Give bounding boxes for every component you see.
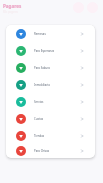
- staticText: Tiendas: [34, 134, 80, 138]
- staticText: Para Sabura: [34, 66, 80, 70]
- staticText: Remesas: [34, 32, 80, 36]
- button[interactable]: Servios: [6, 93, 95, 110]
- staticText: Cuotas: [34, 117, 80, 121]
- button[interactable]: Tiendas: [6, 127, 95, 144]
- button[interactable]: Remesas: [6, 25, 95, 42]
- button[interactable]: Para Sabura: [6, 59, 95, 76]
- button[interactable]: Para Chivas: [6, 144, 95, 158]
- button[interactable]: Inmobiliaria: [6, 76, 95, 93]
- button[interactable]: Para Esperanza: [6, 42, 95, 59]
- staticText: Pagares: [3, 3, 22, 9]
- staticText: Servios: [34, 100, 80, 104]
- staticText: Inmobiliaria: [34, 83, 80, 87]
- staticText: Para Chivas: [34, 149, 80, 153]
- button[interactable]: Cuotas: [6, 110, 95, 127]
- staticText: Mis pagares: [3, 10, 18, 14]
- staticText: Para Esperanza: [34, 49, 80, 53]
